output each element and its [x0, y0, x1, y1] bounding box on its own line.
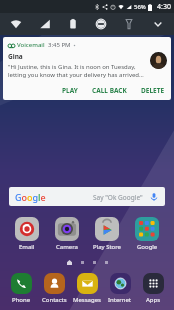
button[interactable]: Apps — [137, 273, 169, 304]
staticText: "Hi Justine, this is Gina. It is noon on… — [8, 63, 146, 79]
staticText: Say "Ok Google" — [93, 193, 143, 202]
staticText: 3:45 PM — [48, 41, 71, 49]
button[interactable]: Wi-Fi — [4, 13, 28, 35]
staticText: PLAY — [62, 86, 78, 95]
button[interactable]: Contact photo — [150, 52, 167, 69]
staticText: DELETE — [141, 86, 165, 95]
staticText: Contacts — [42, 296, 67, 304]
button[interactable]: Phone — [5, 273, 37, 304]
staticText: Phone — [12, 296, 31, 304]
staticText: 56% — [134, 3, 146, 11]
button[interactable]: PLAY — [60, 84, 80, 97]
button[interactable]: Internet — [104, 273, 136, 304]
staticText: Play Store — [93, 243, 121, 251]
button[interactable]: Google — [9, 187, 165, 206]
staticText: Messages — [73, 296, 101, 304]
staticText: Camera — [56, 243, 78, 251]
button[interactable]: CALL BACK — [90, 84, 129, 97]
staticText: Google — [137, 243, 158, 251]
button[interactable]: Camera — [48, 216, 86, 252]
staticText: Gina — [8, 52, 23, 61]
button[interactable]: Voice search — [149, 192, 159, 202]
button[interactable]: Messages — [71, 273, 103, 304]
button[interactable]: Mobile data — [33, 13, 57, 35]
staticText: Voicemail — [17, 41, 45, 49]
button[interactable]: Battery — [61, 13, 85, 35]
staticText: Apps — [146, 296, 161, 304]
button[interactable]: DELETE — [139, 84, 167, 97]
button[interactable]: Play Store — [88, 216, 126, 252]
staticText: Email — [19, 243, 35, 251]
staticText: Internet — [108, 296, 132, 304]
button[interactable]: Do not disturb — [89, 13, 113, 35]
staticText: Google — [15, 191, 46, 203]
button[interactable]: Flashlight — [117, 13, 141, 35]
button[interactable]: Google — [128, 216, 166, 252]
button[interactable]: Voicemail — [3, 37, 171, 100]
button[interactable]: Expand quick settings — [146, 13, 170, 35]
staticText: 4:30 — [157, 2, 171, 12]
button[interactable]: Contacts — [38, 273, 70, 304]
button[interactable]: Email — [8, 216, 46, 252]
staticText: CALL BACK — [92, 86, 127, 95]
